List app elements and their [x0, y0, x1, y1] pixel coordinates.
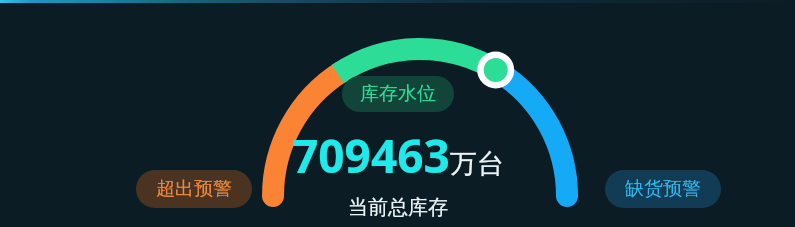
- button[interactable]: 库存水位: [342, 76, 454, 112]
- staticText: 709463万台: [292, 124, 504, 187]
- staticText: 库存水位: [360, 82, 436, 106]
- other: Inventory level gauge: [0, 0, 795, 227]
- button[interactable]: 缺货预警: [605, 170, 721, 208]
- staticText: 缺货预警: [625, 177, 701, 201]
- staticText: 超出预警: [156, 177, 232, 201]
- button[interactable]: 超出预警: [136, 170, 252, 208]
- staticText: 当前总库存: [348, 195, 448, 220]
